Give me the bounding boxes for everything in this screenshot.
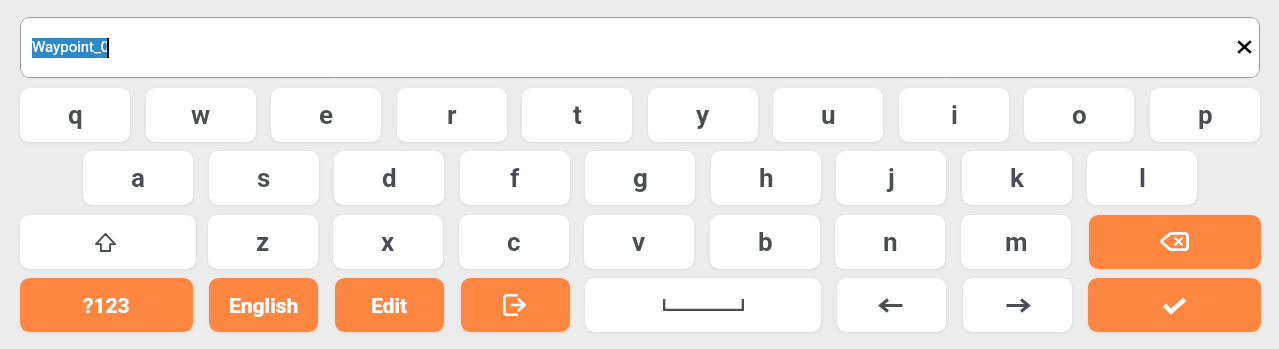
staticText: h xyxy=(759,163,774,193)
button[interactable]: w xyxy=(146,88,256,142)
staticText: i xyxy=(951,100,958,130)
staticText: o xyxy=(1072,100,1087,130)
staticText: d xyxy=(382,163,397,193)
staticText: a xyxy=(131,163,145,193)
staticText: k xyxy=(1010,163,1024,193)
staticText: ?123 xyxy=(83,294,130,319)
button[interactable]: y xyxy=(648,88,758,142)
button[interactable]: Edit xyxy=(335,278,444,332)
button[interactable]: g xyxy=(585,151,695,205)
button[interactable] xyxy=(20,17,1260,78)
button[interactable]: f xyxy=(460,151,570,205)
button[interactable]: e xyxy=(271,88,381,142)
button[interactable]: n xyxy=(835,215,945,269)
staticText: j xyxy=(888,163,895,193)
staticText: w xyxy=(191,100,211,130)
staticText: y xyxy=(696,100,710,130)
button[interactable]: i xyxy=(899,88,1009,142)
button[interactable]: Done xyxy=(1088,278,1261,332)
staticText: English xyxy=(229,294,299,319)
button[interactable]: k xyxy=(962,151,1072,205)
button[interactable]: Space xyxy=(585,278,821,332)
button[interactable]: Move cursor left xyxy=(837,278,946,332)
button[interactable]: r xyxy=(397,88,507,142)
button[interactable]: z xyxy=(208,215,318,269)
staticText: s xyxy=(257,163,271,193)
staticText: Waypoint_0 xyxy=(32,38,110,56)
button[interactable]: c xyxy=(459,215,569,269)
staticText: b xyxy=(758,227,773,257)
button[interactable]: Move cursor right xyxy=(963,278,1072,332)
button[interactable]: English xyxy=(209,278,318,332)
button[interactable]: b xyxy=(710,215,820,269)
button[interactable]: t xyxy=(522,88,632,142)
button[interactable]: Export xyxy=(461,278,570,332)
staticText: p xyxy=(1198,100,1213,130)
staticText: r xyxy=(447,100,457,130)
button[interactable]: a xyxy=(83,151,193,205)
staticText: n xyxy=(883,227,898,257)
staticText: t xyxy=(573,100,582,130)
button[interactable]: m xyxy=(961,215,1071,269)
staticText: v xyxy=(632,227,646,257)
staticText: e xyxy=(319,100,334,130)
button[interactable]: u xyxy=(773,88,883,142)
button[interactable]: j xyxy=(836,151,946,205)
button[interactable]: Backspace xyxy=(1089,215,1261,269)
button[interactable]: o xyxy=(1024,88,1134,142)
button[interactable]: p xyxy=(1150,88,1260,142)
button[interactable]: v xyxy=(584,215,694,269)
button[interactable]: s xyxy=(209,151,319,205)
button[interactable]: ?123 xyxy=(20,278,193,332)
staticText: u xyxy=(821,100,836,130)
button[interactable]: d xyxy=(334,151,444,205)
staticText: x xyxy=(381,227,395,257)
button[interactable]: h xyxy=(711,151,821,205)
staticText: m xyxy=(1005,227,1028,257)
button[interactable]: Shift xyxy=(20,215,196,269)
staticText: q xyxy=(68,100,83,130)
button[interactable]: x xyxy=(333,215,443,269)
staticText: g xyxy=(633,163,648,193)
button[interactable]: l xyxy=(1087,151,1197,205)
staticText: f xyxy=(510,163,520,193)
staticText: Edit xyxy=(371,294,408,319)
button[interactable]: q xyxy=(20,88,130,142)
staticText: z xyxy=(256,227,270,257)
staticText: l xyxy=(1139,163,1146,193)
button[interactable]: Clear text xyxy=(1232,34,1257,59)
staticText: c xyxy=(507,227,521,257)
